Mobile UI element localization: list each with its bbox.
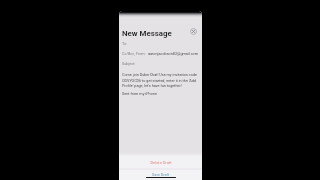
button[interactable]: New Message	[122, 28, 172, 39]
button[interactable]: Close	[190, 28, 197, 35]
staticText: Delete Draft	[150, 160, 172, 165]
staticText: Come join DuberChat! Use my invitation c…	[122, 73, 199, 88]
staticText: Sent from my iPhone	[122, 92, 157, 96]
staticText: Cc/Bcc, From:	[122, 52, 146, 56]
staticText: Save Draft	[152, 173, 169, 177]
staticText: New Message	[122, 29, 172, 38]
staticText: To:	[122, 42, 128, 46]
staticText: aaronjacobson82@gmail.com	[148, 52, 199, 56]
button[interactable]: Delete Draft	[119, 157, 202, 167]
button[interactable]: Save Draft	[119, 170, 202, 180]
staticText: Subject:	[122, 62, 136, 66]
